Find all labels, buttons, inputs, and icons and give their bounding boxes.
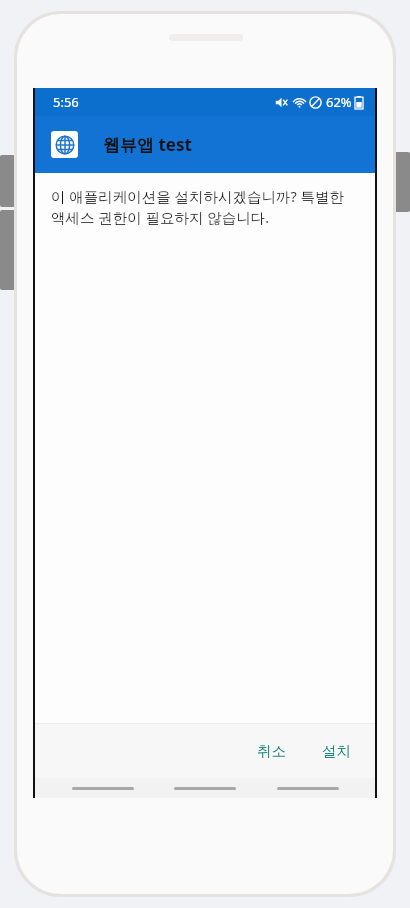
staticText: 설치 [322,742,351,760]
button[interactable]: 취소 [243,734,300,768]
staticText: 웹뷰앱 test [103,133,192,156]
staticText: 62% [326,93,352,111]
button[interactable]: 설치 [308,734,365,768]
button[interactable]: Back [273,778,343,798]
staticText: 이 애플리케이션을 설치하시겠습니까? 특별한 액세스 권한이 필요하지 않습니… [51,186,361,228]
button[interactable]: Home [170,778,240,798]
staticText: 5:56 [53,93,79,111]
button[interactable]: Recents [68,778,138,798]
staticText: 취소 [257,742,286,760]
